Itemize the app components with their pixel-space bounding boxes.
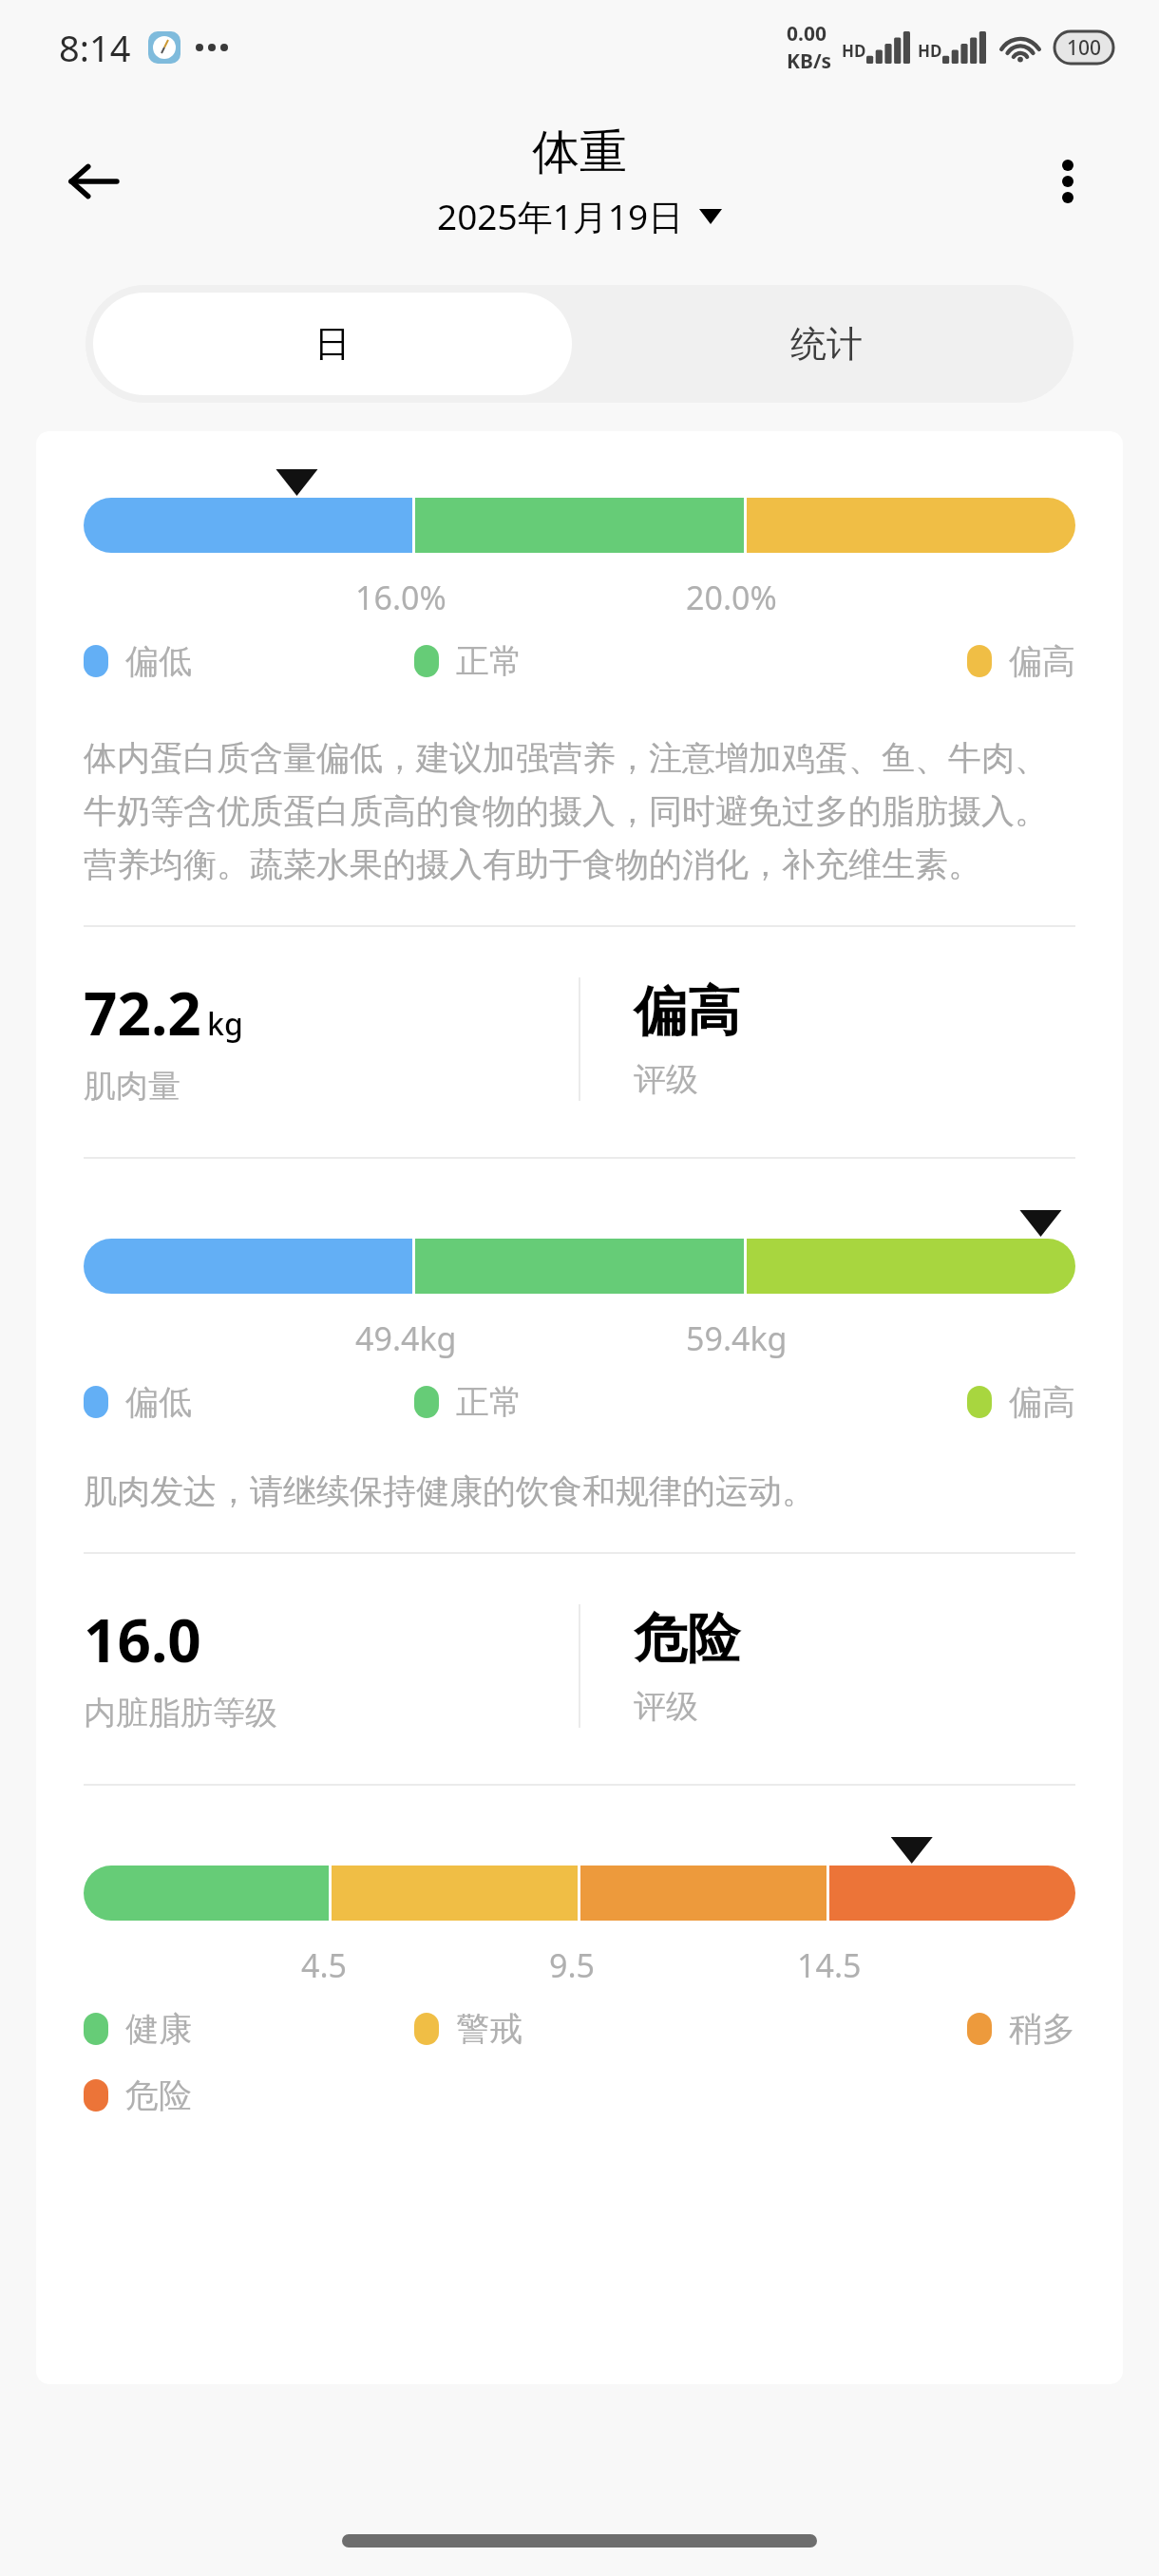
button[interactable]: 2025年1月19日: [437, 192, 722, 240]
staticText: HD: [842, 40, 866, 62]
staticText: KB/s: [787, 47, 832, 75]
staticText: HD: [918, 40, 942, 62]
staticText: 危险: [634, 1605, 740, 1673]
button[interactable]: 日: [93, 293, 572, 395]
staticText: 健康: [125, 2008, 192, 2050]
staticText: 内脏脂肪等级: [84, 1693, 277, 1733]
staticText: 72.2: [84, 973, 201, 1052]
staticText: 16.0%: [355, 576, 446, 619]
staticText: 20.0%: [686, 576, 777, 619]
button[interactable]: More options: [1026, 140, 1110, 223]
staticText: 9.5: [549, 1943, 596, 1987]
button[interactable]: 统计: [579, 285, 1073, 403]
staticText: 14.5: [797, 1943, 862, 1987]
staticText: 警戒: [456, 2008, 522, 2050]
button[interactable]: Back: [49, 137, 139, 226]
staticText: 危险: [125, 2074, 192, 2116]
staticText: 偏高: [1009, 1381, 1075, 1423]
staticText: 100: [1067, 34, 1102, 62]
staticText: 偏低: [125, 640, 192, 682]
staticText: 肌肉发达，请继续保持健康的饮食和规律的运动。: [84, 1470, 815, 1512]
staticText: 16.0: [84, 1600, 201, 1679]
staticText: 2025年1月19日: [437, 192, 684, 240]
staticText: 4.5: [301, 1943, 348, 1987]
staticText: 偏高: [634, 978, 740, 1046]
staticText: 日: [314, 321, 351, 367]
staticText: 59.4kg: [686, 1316, 788, 1360]
staticText: 49.4kg: [355, 1316, 457, 1360]
staticText: 肌肉量: [84, 1066, 180, 1107]
staticText: 8:14: [59, 23, 131, 72]
staticText: 0.00: [787, 20, 826, 47]
staticText: 评级: [634, 1059, 698, 1100]
staticText: 正常: [456, 1381, 522, 1423]
staticText: 统计: [790, 321, 863, 367]
staticText: 偏高: [1009, 640, 1075, 682]
staticText: 偏低: [125, 1381, 192, 1423]
staticText: 体内蛋白质含量偏低，建议加强营养，注意增加鸡蛋、鱼、牛肉、牛奶等含优质蛋白质高的…: [84, 737, 1075, 885]
staticText: 稍多: [1009, 2008, 1075, 2050]
staticText: 评级: [634, 1686, 698, 1727]
staticText: kg: [207, 1003, 243, 1045]
staticText: 体重: [532, 123, 627, 182]
staticText: 正常: [456, 640, 522, 682]
